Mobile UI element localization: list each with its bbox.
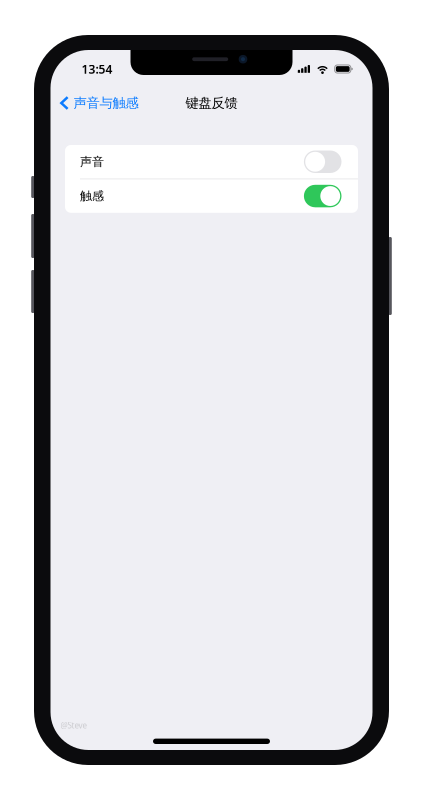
staticText: 键盘反馈 xyxy=(185,95,237,111)
staticText: 声音 xyxy=(80,154,104,169)
button[interactable]: 触感 xyxy=(65,179,358,213)
button[interactable]: 声音与触感 xyxy=(50,90,138,116)
staticText: @Steve xyxy=(60,720,87,731)
staticText: 声音与触感 xyxy=(73,95,138,111)
staticText: 13:54 xyxy=(81,61,112,77)
staticText: 触感 xyxy=(80,189,104,203)
button[interactable]: 声音 xyxy=(65,145,358,178)
